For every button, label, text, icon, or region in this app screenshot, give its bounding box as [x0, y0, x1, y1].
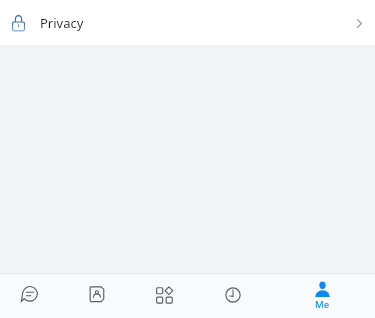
staticText: Privacy	[40, 14, 84, 32]
button[interactable]: Chats	[0, 273, 63, 317]
button[interactable]: Privacy	[0, 0, 375, 45]
staticText: Me	[315, 298, 330, 311]
button[interactable]: Discover	[131, 273, 199, 317]
button[interactable]: Contacts	[63, 273, 131, 317]
button[interactable]: Me	[288, 274, 356, 318]
button[interactable]: Moments	[199, 273, 267, 317]
